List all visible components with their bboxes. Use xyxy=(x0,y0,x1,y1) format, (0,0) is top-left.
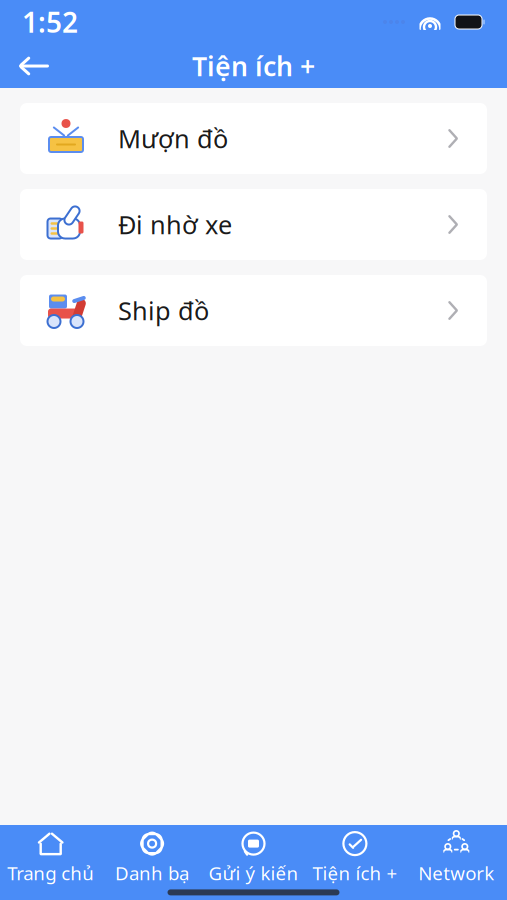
button[interactable]: Ship đồ xyxy=(20,275,487,346)
staticText: Đi nhờ xe xyxy=(118,208,232,241)
staticText: 1:52 xyxy=(22,3,78,41)
staticText: Gửi ý kiến xyxy=(208,861,298,885)
staticText: Tiện ích + xyxy=(312,861,397,885)
button[interactable]: Danh bạ xyxy=(101,823,203,885)
button[interactable]: Back xyxy=(12,44,56,88)
staticText: Mượn đồ xyxy=(118,122,228,155)
button[interactable]: Mượn đồ xyxy=(20,103,487,174)
button[interactable]: Tiện ích + xyxy=(304,823,406,885)
button[interactable]: Đi nhờ xe xyxy=(20,189,487,260)
staticText: Danh bạ xyxy=(115,861,189,885)
staticText: Trang chủ xyxy=(7,861,94,885)
staticText: Tiện ích + xyxy=(192,48,315,84)
button[interactable]: Gửi ý kiến xyxy=(203,823,304,885)
staticText: Network xyxy=(418,861,494,885)
button[interactable]: Trang chủ xyxy=(0,823,101,885)
button[interactable]: Network xyxy=(406,823,507,885)
staticText: Ship đồ xyxy=(118,294,209,327)
